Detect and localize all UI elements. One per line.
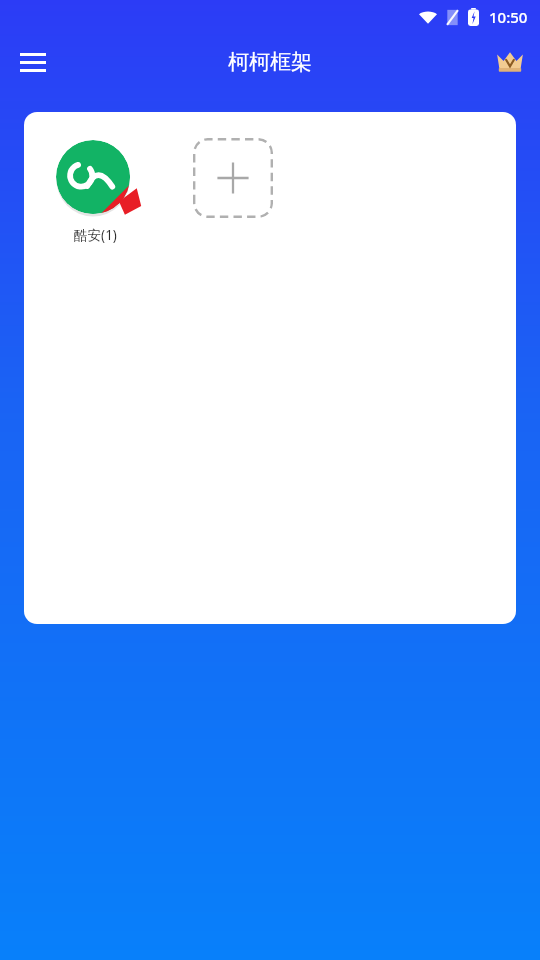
button[interactable]: Menu (12, 41, 54, 83)
button[interactable]: VIP (490, 42, 530, 82)
staticText: 10:50 (489, 7, 528, 27)
button[interactable]: Add app (193, 138, 273, 218)
staticText: 柯柯框架 (228, 49, 312, 75)
button[interactable]: 酷安(1) (46, 138, 144, 246)
staticText: 酷安(1) (74, 226, 117, 244)
